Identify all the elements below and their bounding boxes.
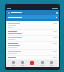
button[interactable]: Home [11, 60, 16, 67]
button[interactable]: Search [7, 15, 58, 19]
button[interactable] [7, 30, 58, 35]
button[interactable] [7, 56, 58, 59]
button[interactable] [7, 22, 58, 29]
button[interactable] [7, 42, 58, 49]
button[interactable]: Record [29, 60, 35, 67]
button[interactable]: Profile [49, 60, 54, 67]
button[interactable]: Menu [7, 11, 10, 14]
button[interactable] [7, 36, 58, 41]
button[interactable]: Library [20, 60, 25, 67]
button[interactable] [7, 50, 58, 55]
button[interactable]: Alerts [40, 60, 45, 67]
